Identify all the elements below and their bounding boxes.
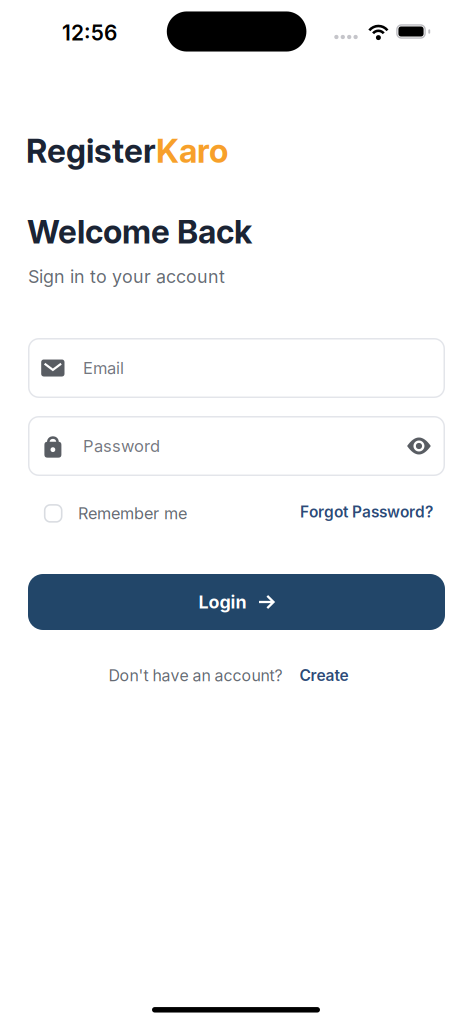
button[interactable]: Forgot Password? bbox=[300, 504, 433, 523]
staticText: Register bbox=[26, 131, 156, 171]
button[interactable]: Remember me bbox=[44, 504, 187, 523]
button[interactable]: Password bbox=[28, 416, 445, 476]
button[interactable]: Login bbox=[28, 574, 445, 630]
staticText: Login bbox=[198, 591, 246, 613]
button[interactable]: Email bbox=[28, 338, 445, 398]
staticText: Welcome Back bbox=[27, 212, 252, 251]
staticText: Password bbox=[83, 436, 160, 456]
staticText: Sign in to your account bbox=[28, 266, 225, 287]
staticText: Don't have an account? bbox=[108, 666, 282, 685]
staticText: Karo bbox=[156, 131, 228, 171]
staticText: Email bbox=[83, 358, 124, 378]
staticText: Create bbox=[299, 666, 348, 685]
staticText: 12:56 bbox=[62, 20, 117, 46]
staticText: Forgot Password? bbox=[300, 502, 433, 521]
staticText: Remember me bbox=[78, 504, 187, 523]
button[interactable]: Create bbox=[299, 666, 348, 685]
